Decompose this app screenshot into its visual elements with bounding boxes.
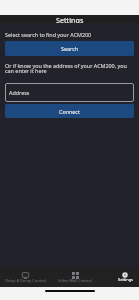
other: Settings [122,272,128,278]
staticText: Delay & Decay Control [5,278,46,283]
staticText: Search [61,45,79,52]
button[interactable]: Video Wall Control [50,268,100,287]
staticText: Settings [118,277,133,282]
staticText: Connect [59,108,80,115]
button[interactable]: Search [5,41,134,56]
staticText: Video Wall Control [58,278,92,283]
staticText: Or if know you the address of your ACM20… [5,62,134,75]
button[interactable]: Connect [5,104,134,118]
staticText: Address [9,89,30,96]
other: Delay and Decay Control [22,272,29,279]
button[interactable]: Settings [100,268,139,287]
button[interactable]: Delay and Decay Control [0,268,50,287]
other: Video Wall Control [72,272,79,279]
button[interactable]: Address [5,83,134,102]
staticText: Select search to find your ACM200 [5,31,92,38]
staticText: Settings [56,15,84,23]
